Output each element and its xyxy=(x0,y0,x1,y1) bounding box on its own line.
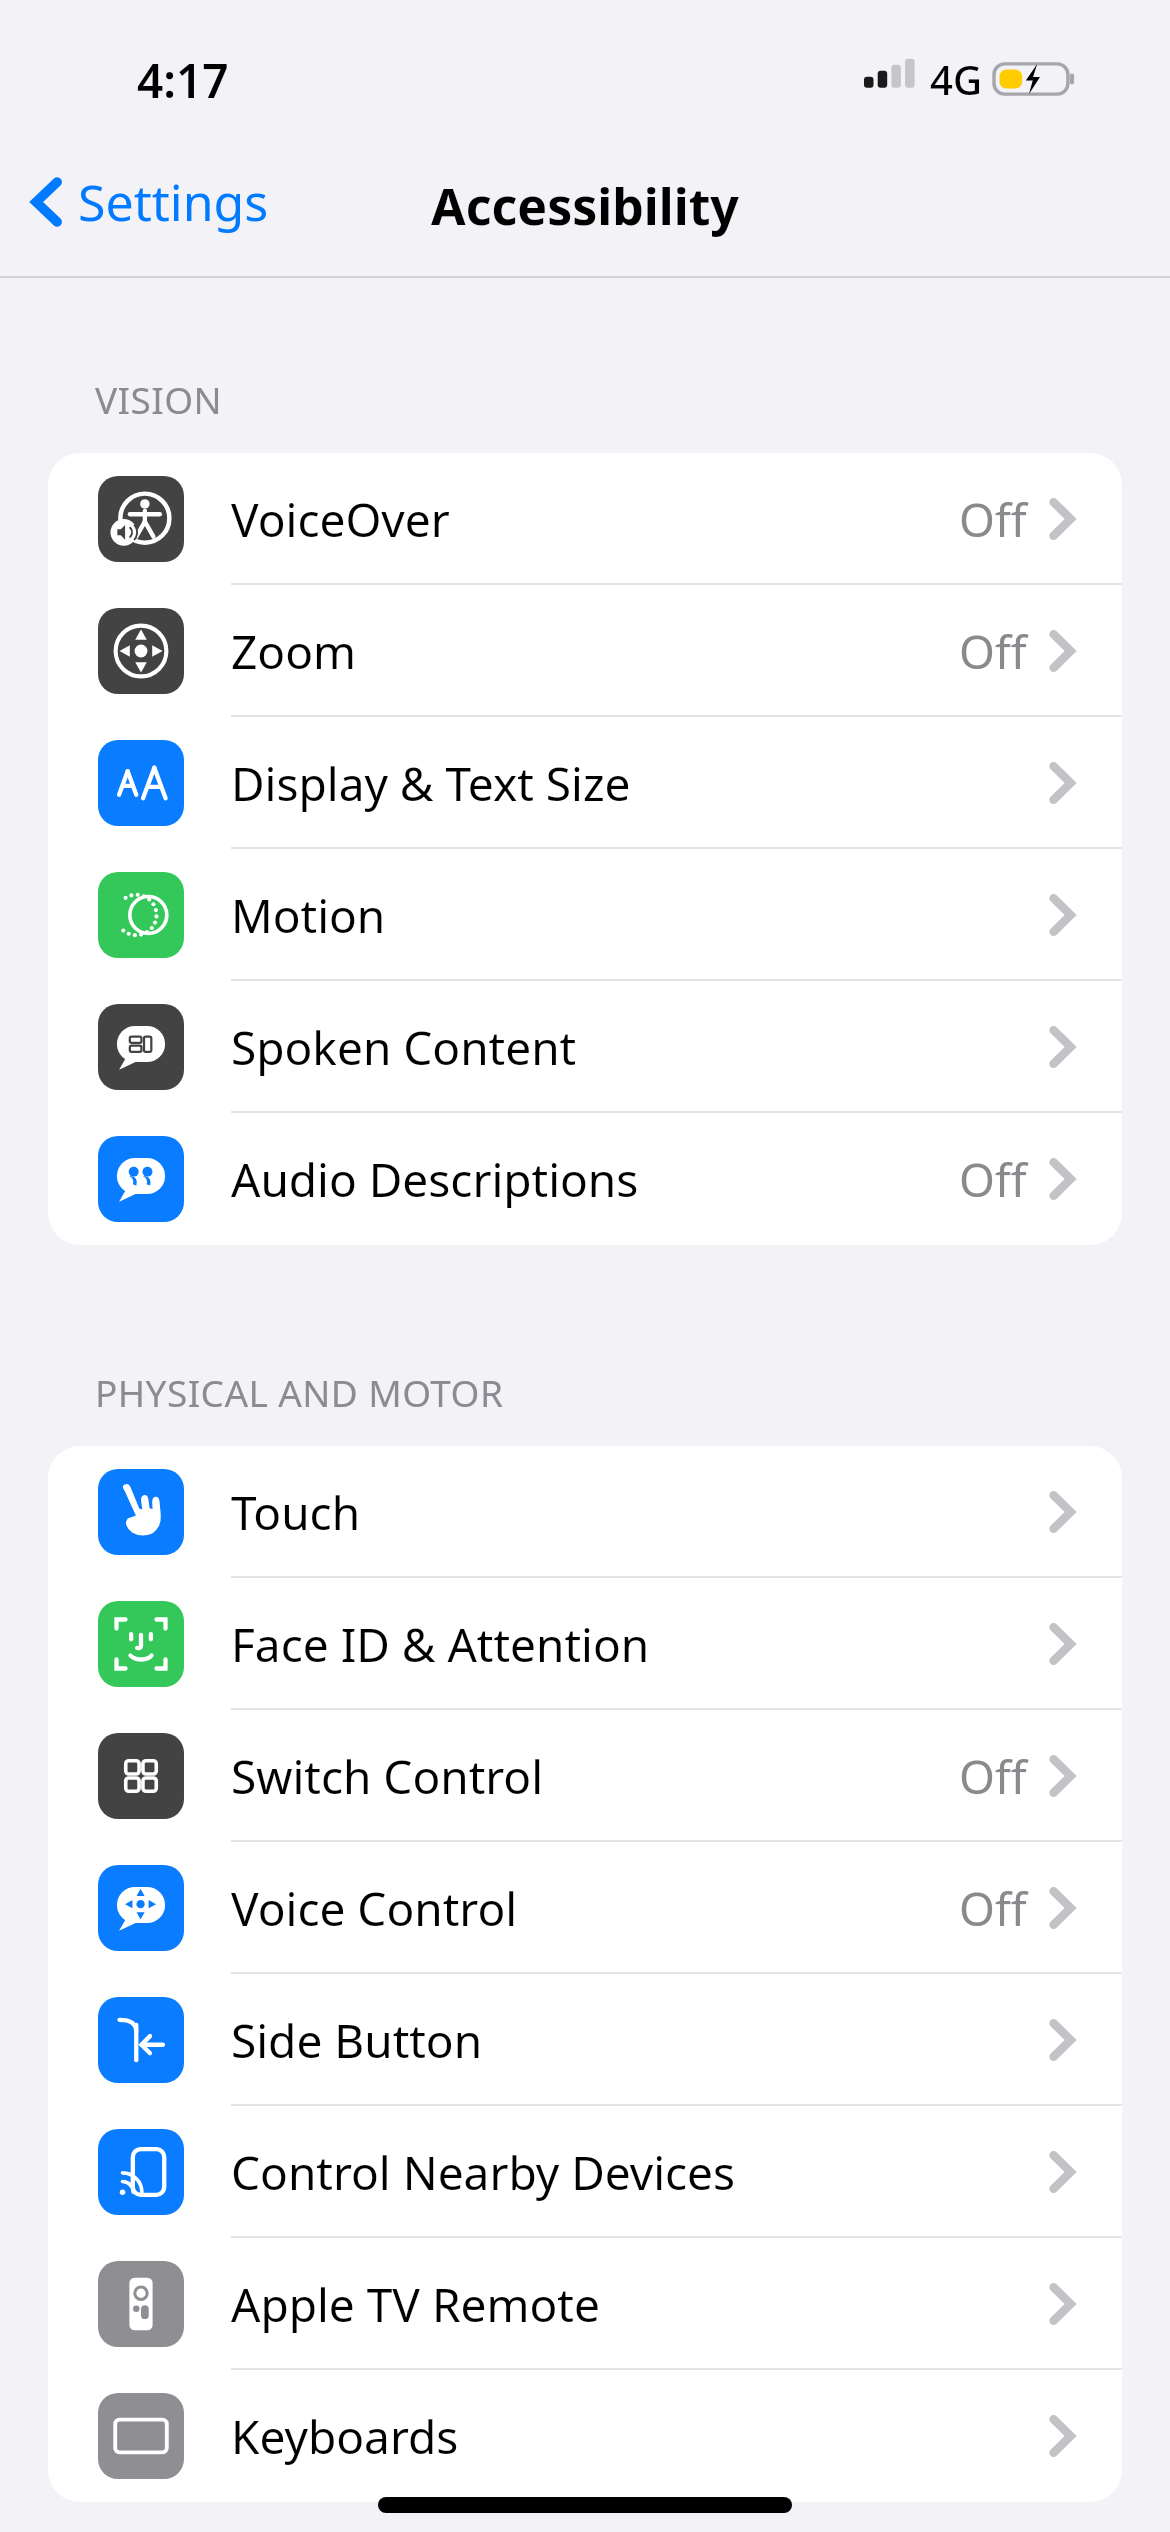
staticText: Off xyxy=(959,1745,1027,1808)
button[interactable]: VoiceOver xyxy=(48,453,1122,585)
button[interactable]: Face ID & Attention xyxy=(48,1578,1122,1710)
button[interactable]: Keyboards xyxy=(48,2370,1122,2502)
staticText: Display & Text Size xyxy=(231,752,631,815)
button[interactable]: Control Nearby Devices xyxy=(48,2106,1122,2238)
staticText: Spoken Content xyxy=(231,1016,577,1079)
button[interactable]: Side Button xyxy=(48,1974,1122,2106)
staticText: Keyboards xyxy=(231,2405,459,2468)
staticText: Zoom xyxy=(231,620,356,683)
staticText: 4:17 xyxy=(137,49,229,112)
staticText: Settings xyxy=(78,168,269,236)
staticText: Off xyxy=(959,488,1027,551)
staticText: VoiceOver xyxy=(231,488,450,551)
button[interactable]: Zoom xyxy=(48,585,1122,717)
staticText: Accessibility xyxy=(431,172,739,240)
staticText: Apple TV Remote xyxy=(231,2273,600,2336)
button[interactable]: Motion xyxy=(48,849,1122,981)
button[interactable]: Audio Descriptions xyxy=(48,1113,1122,1245)
staticText: Control Nearby Devices xyxy=(231,2141,736,2204)
staticText: Voice Control xyxy=(231,1877,518,1940)
staticText: Off xyxy=(959,1148,1027,1211)
button[interactable]: Switch Control xyxy=(48,1710,1122,1842)
button[interactable]: Display & Text Size xyxy=(48,717,1122,849)
button[interactable]: Touch xyxy=(48,1446,1122,1578)
staticText: Switch Control xyxy=(231,1745,544,1808)
button[interactable]: Spoken Content xyxy=(48,981,1122,1113)
button[interactable]: Settings xyxy=(22,162,277,242)
staticText: Off xyxy=(959,1877,1027,1940)
staticText: Touch xyxy=(231,1481,361,1544)
button[interactable]: Apple TV Remote xyxy=(48,2238,1122,2370)
staticText: VISION xyxy=(95,374,223,424)
staticText: PHYSICAL AND MOTOR xyxy=(95,1367,504,1417)
staticText: Audio Descriptions xyxy=(231,1148,639,1211)
staticText: Motion xyxy=(231,884,386,947)
button[interactable]: Voice Control xyxy=(48,1842,1122,1974)
staticText: Side Button xyxy=(231,2009,483,2072)
staticText: 4G xyxy=(930,52,982,106)
staticText: Face ID & Attention xyxy=(231,1613,650,1676)
staticText: Off xyxy=(959,620,1027,683)
